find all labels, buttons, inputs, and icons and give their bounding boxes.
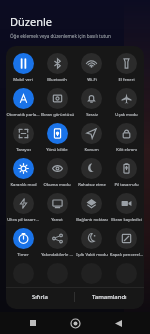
button[interactable]: Sessiz: [74, 86, 109, 121]
button[interactable]: Ekran görüntüsü: [40, 86, 74, 121]
staticText: El feneri: [118, 77, 135, 83]
staticText: Timer: [17, 252, 29, 258]
staticText: Pil tasarrufu: [114, 182, 139, 188]
staticText: Okuma modu: [43, 182, 71, 188]
button[interactable]: Tarayıcı: [6, 121, 40, 156]
button[interactable]: Yönü kilitle: [40, 121, 74, 156]
staticText: Yönü kilitle: [46, 147, 68, 153]
button[interactable]: Wi-Fi: [74, 51, 109, 86]
button[interactable]: Home: [65, 313, 85, 333]
button[interactable]: Pil tasarrufu: [109, 156, 144, 191]
staticText: Yansıt: [51, 217, 63, 223]
staticText: Bağlantı noktası: [76, 217, 108, 223]
button[interactable]: Sıfırla: [6, 288, 74, 306]
staticText: Düzenle: [10, 14, 53, 29]
staticText: Mobil veri: [13, 77, 33, 83]
staticText: Karanlık mod: [10, 182, 37, 188]
staticText: Ekran kaydedici: [111, 217, 142, 223]
staticText: Otomatik parlaklık: [6, 112, 40, 118]
button[interactable]: Konum: [74, 121, 109, 156]
staticText: Sessiz: [86, 112, 98, 118]
button[interactable]: Timer: [6, 226, 40, 261]
button[interactable]: Kapalı pencereleri: [109, 226, 144, 261]
button[interactable]: Yansıt: [40, 191, 74, 226]
button[interactable]: Recents: [23, 313, 43, 333]
staticText: Kapalı pencereleri: [109, 252, 144, 258]
staticText: Sıfırla: [32, 293, 48, 301]
button[interactable]: Yakındakilerle Pay: [40, 226, 74, 261]
button[interactable]: Rahatsız etme: [74, 156, 109, 191]
button[interactable]: Ultra pil tasarrufu: [6, 191, 40, 226]
button[interactable]: Bağlantı noktası: [74, 191, 109, 226]
staticText: Rahatsız etme: [78, 182, 106, 188]
button[interactable]: Karanlık mod: [6, 156, 40, 191]
staticText: Konum: [84, 147, 99, 153]
button[interactable]: Back: [108, 313, 128, 333]
button[interactable]: Okuma modu: [40, 156, 74, 191]
button[interactable]: Otomatik parlaklık: [6, 86, 40, 121]
staticText: Işıltı Vakit modu: [76, 252, 108, 258]
staticText: Yakındakilerle Pay: [40, 252, 74, 258]
button[interactable]: Uçak modu: [109, 86, 144, 121]
button[interactable]: Kilit ekranı: [109, 121, 144, 156]
button[interactable]: Tamamlandı: [75, 288, 144, 306]
button[interactable]: El feneri: [109, 51, 144, 86]
button[interactable]: Bluetooth: [40, 51, 74, 86]
staticText: Tarayıcı: [16, 147, 31, 153]
button[interactable]: Ekran kaydedici: [109, 191, 144, 226]
staticText: Öğe eklemek veya düzenlemek için basılı …: [10, 33, 111, 39]
staticText: Ekran görüntüsü: [41, 112, 74, 118]
staticText: Ultra pil tasarrufu: [6, 217, 40, 223]
staticText: Wi-Fi: [87, 77, 97, 83]
staticText: Bluetooth: [47, 77, 67, 83]
staticText: Kilit ekranı: [116, 147, 137, 153]
button[interactable]: Işıltı Vakit modu: [74, 226, 109, 261]
button[interactable]: Mobil veri: [6, 51, 40, 86]
staticText: Uçak modu: [115, 112, 138, 118]
staticText: Tamamlandı: [92, 293, 127, 301]
